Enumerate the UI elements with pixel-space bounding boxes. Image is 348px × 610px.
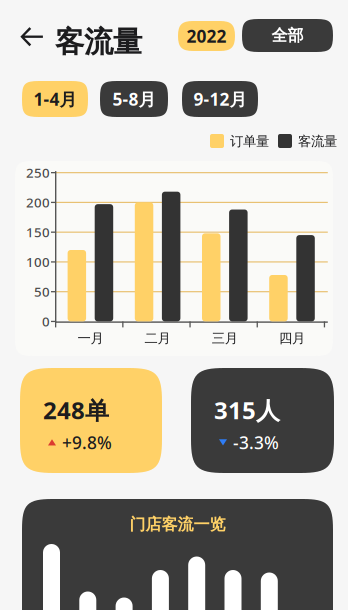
staticText: +9.8% xyxy=(62,431,112,454)
button[interactable]: 315人 xyxy=(191,368,334,473)
staticText: -3.3% xyxy=(233,431,279,454)
button[interactable]: 248单 xyxy=(20,368,162,473)
staticText: 250 xyxy=(26,164,50,181)
button[interactable]: 2022 xyxy=(178,21,235,51)
staticText: 二月 xyxy=(145,330,171,347)
staticText: 0 xyxy=(42,312,50,330)
staticText: 5-8月 xyxy=(112,87,155,110)
staticText: 门店客流一览 xyxy=(129,515,225,534)
staticText: 100 xyxy=(26,253,50,271)
staticText: 订单量 xyxy=(230,133,269,149)
staticText: 315人 xyxy=(214,394,280,426)
staticText: 全部 xyxy=(271,26,303,45)
staticText: 50 xyxy=(34,283,50,300)
staticText: 1-4月 xyxy=(33,87,76,110)
staticText: 四月 xyxy=(279,330,305,347)
staticText: 9-12月 xyxy=(193,87,246,110)
button[interactable]: 1-4月 xyxy=(22,81,88,117)
staticText: 248单 xyxy=(43,394,109,426)
button[interactable]: 9-12月 xyxy=(182,81,258,117)
staticText: 三月 xyxy=(212,330,238,347)
staticText: 2022 xyxy=(186,24,226,47)
button[interactable]: 全部 xyxy=(242,19,333,52)
staticText: 一月 xyxy=(77,330,103,347)
button[interactable]: 返回 xyxy=(14,17,50,57)
staticText: 200 xyxy=(26,193,50,211)
staticText: 150 xyxy=(26,223,50,241)
button[interactable]: 5-8月 xyxy=(100,81,168,117)
staticText: 客流量 xyxy=(298,133,337,149)
staticText: 客流量 xyxy=(55,24,142,60)
